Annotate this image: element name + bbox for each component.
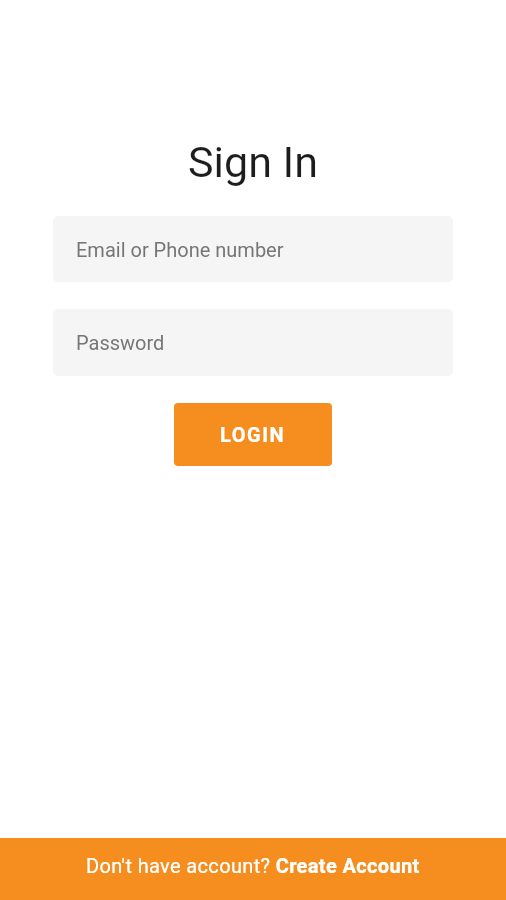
staticText: Password bbox=[76, 331, 165, 354]
staticText: Email or Phone number bbox=[76, 238, 284, 261]
staticText: LOGIN bbox=[220, 423, 286, 446]
staticText: Don't have account? Create Account bbox=[86, 854, 420, 877]
button[interactable]: Don't have account? Create Account bbox=[0, 838, 506, 900]
staticText: Sign In bbox=[188, 137, 318, 187]
button[interactable]: LOGIN bbox=[174, 403, 332, 466]
button[interactable]: Email or Phone number field bbox=[53, 216, 453, 282]
button[interactable]: Password field bbox=[53, 309, 453, 376]
